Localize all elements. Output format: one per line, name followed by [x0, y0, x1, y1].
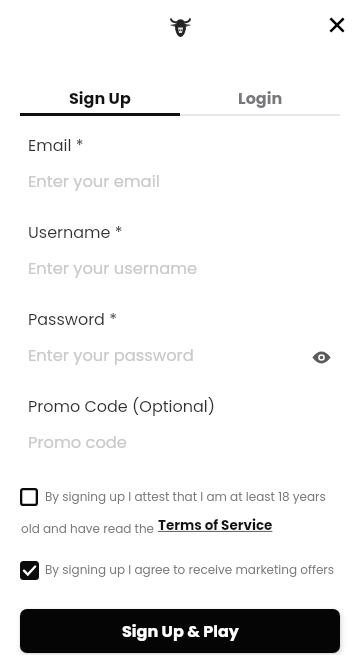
button[interactable]: Sign Up	[20, 86, 180, 110]
staticText: Sign Up	[69, 87, 131, 109]
staticText: Enter your email	[28, 170, 160, 193]
staticText: By signing up I attest that I am at leas…	[45, 488, 326, 505]
button[interactable]: Login	[180, 86, 340, 110]
button[interactable]: Terms of Service	[158, 516, 273, 535]
button[interactable]: Close	[319, 7, 355, 43]
staticText: Enter your username	[28, 257, 198, 280]
staticText: Username *	[28, 221, 123, 243]
staticText: Email *	[28, 134, 84, 156]
staticText: old and have read the	[21, 520, 158, 537]
staticText: Promo code	[28, 431, 127, 454]
staticText: Login	[238, 87, 283, 109]
staticText: By signing up I agree to receive marketi…	[45, 561, 335, 578]
staticText: Sign Up & Play	[122, 620, 239, 642]
button[interactable]: Attest that I am at least 18 years old	[20, 488, 38, 506]
button[interactable]: Agree to receive marketing offers	[20, 561, 39, 580]
staticText: Promo Code (Optional)	[28, 395, 215, 417]
button[interactable]: Show password	[305, 341, 337, 373]
button[interactable]: Sign Up & Play	[20, 609, 340, 653]
staticText: Password *	[28, 308, 117, 330]
staticText: Terms of Service	[158, 516, 273, 535]
staticText: Enter your password	[28, 344, 194, 367]
